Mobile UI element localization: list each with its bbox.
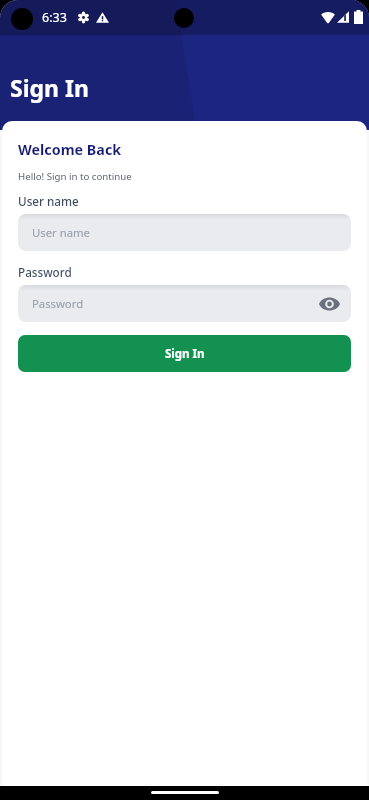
- staticText: Welcome Back: [18, 140, 122, 159]
- staticText: Password: [32, 296, 84, 311]
- button[interactable]: Sign In: [18, 335, 351, 372]
- staticText: Hello! Sign in to continue: [18, 170, 132, 183]
- staticText: User name: [18, 193, 79, 209]
- button[interactable]: User name: [18, 214, 351, 251]
- button[interactable]: Password: [18, 285, 351, 322]
- staticText: Sign In: [10, 72, 89, 103]
- staticText: Password: [18, 264, 72, 280]
- staticText: Sign In: [165, 346, 205, 362]
- staticText: 6:33: [42, 9, 67, 26]
- staticText: User name: [32, 225, 90, 240]
- button[interactable]: Show password: [318, 293, 340, 315]
